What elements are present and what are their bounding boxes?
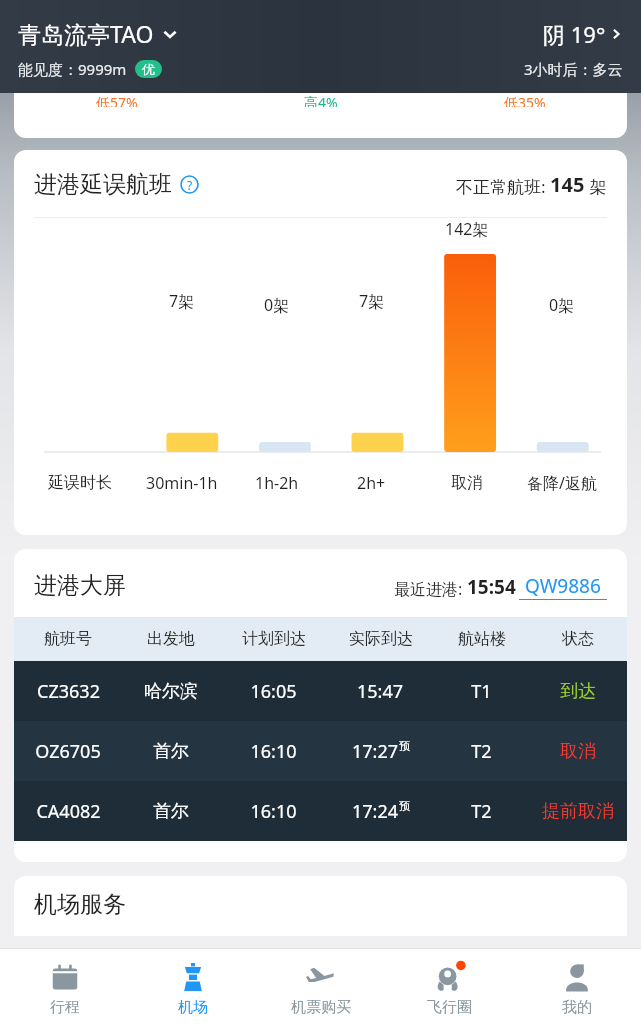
staticText: 阴 19° — [543, 19, 606, 49]
staticText: OZ6705 — [35, 739, 101, 764]
button[interactable]: 进港大屏 — [14, 549, 627, 862]
button[interactable]: 机场服务 — [14, 876, 627, 936]
staticText: 不正常航班: — [456, 175, 550, 198]
staticText: 实际到达 — [349, 629, 413, 649]
button[interactable]: 机票购买 — [257, 948, 385, 1030]
staticText: T2 — [471, 799, 492, 824]
staticText: 状态 — [562, 629, 594, 649]
button[interactable]: CZ3632 — [14, 661, 627, 721]
staticText: 预 — [399, 799, 410, 813]
staticText: CZ3632 — [37, 679, 100, 704]
staticText: 到达 — [560, 680, 596, 703]
staticText: 30min-1h — [146, 472, 218, 494]
button[interactable]: 我的 — [513, 948, 641, 1030]
staticText: 机场 — [178, 998, 208, 1017]
staticText: 15:54 — [467, 574, 516, 600]
staticText: 低57% — [96, 93, 138, 107]
staticText: 航站楼 — [458, 629, 506, 649]
button[interactable]: QW9886 — [519, 573, 607, 600]
staticText: 机票购买 — [291, 998, 351, 1017]
staticText: 首尔 — [153, 800, 189, 823]
staticText: 3小时后：多云 — [524, 59, 623, 79]
button[interactable]: 进港延误航班 — [14, 150, 627, 535]
button[interactable]: 帮助 — [180, 175, 199, 194]
button[interactable]: 机场 — [129, 948, 257, 1030]
staticText: 16:10 — [250, 739, 297, 764]
staticText: 低35% — [504, 93, 546, 107]
staticText: 高4% — [304, 93, 338, 107]
staticText: 进港延误航班 — [34, 170, 172, 199]
button[interactable]: 低57% — [14, 93, 627, 138]
staticText: 备降/返航 — [527, 472, 597, 494]
staticText: 能见度：9999m — [18, 59, 127, 79]
staticText: ? — [187, 177, 193, 193]
staticText: 17:24 — [352, 799, 399, 824]
staticText: 15:47 — [357, 679, 404, 704]
button[interactable]: 阴 19° — [543, 19, 623, 49]
staticText: 出发地 — [147, 629, 195, 649]
staticText: 7架 — [169, 290, 195, 312]
button[interactable]: 飞行圈 — [385, 948, 513, 1030]
staticText: 青岛流亭TAO — [18, 18, 154, 49]
staticText: 架 — [585, 175, 607, 198]
staticText: 最近进港: — [394, 578, 467, 600]
button[interactable]: CA4082 — [14, 781, 627, 841]
staticText: 1h-2h — [255, 472, 299, 494]
staticText: 取消 — [560, 740, 596, 763]
staticText: 首尔 — [153, 740, 189, 763]
staticText: 17:27 — [352, 739, 399, 764]
staticText: 哈尔滨 — [144, 680, 198, 703]
staticText: 2h+ — [357, 472, 386, 494]
staticText: 145 — [550, 171, 585, 198]
staticText: 0架 — [549, 294, 575, 316]
staticText: 计划到达 — [242, 629, 306, 649]
staticText: 机场服务 — [34, 890, 126, 919]
staticText: 优 — [142, 61, 155, 77]
staticText: 7架 — [359, 290, 385, 312]
staticText: 0架 — [264, 294, 290, 316]
staticText: 预 — [399, 739, 410, 753]
staticText: 142架 — [445, 218, 489, 240]
button[interactable]: 青岛流亭TAO — [18, 18, 178, 49]
staticText: 飞行圈 — [427, 998, 472, 1017]
staticText: 提前取消 — [542, 800, 614, 823]
staticText: 延误时长 — [48, 473, 112, 493]
staticText: T2 — [471, 739, 492, 764]
staticText: QW9886 — [525, 573, 601, 599]
staticText: 我的 — [562, 998, 592, 1017]
staticText: 进港大屏 — [34, 571, 126, 600]
staticText: 16:10 — [250, 799, 297, 824]
staticText: T1 — [471, 679, 492, 704]
button[interactable]: OZ6705 — [14, 721, 627, 781]
staticText: CA4082 — [36, 799, 101, 824]
staticText: 行程 — [50, 998, 80, 1017]
staticText: 取消 — [451, 473, 483, 493]
button[interactable]: 行程 — [0, 948, 129, 1030]
staticText: 16:05 — [250, 679, 297, 704]
staticText: 航班号 — [44, 629, 92, 649]
